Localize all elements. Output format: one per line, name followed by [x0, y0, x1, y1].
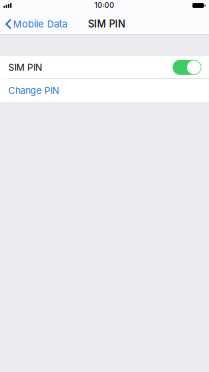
- staticText: 10:00: [94, 1, 114, 10]
- staticText: SIM PIN: [8, 62, 42, 73]
- staticText: SIM PIN: [88, 18, 125, 30]
- button[interactable]: Mobile Data: [0, 14, 67, 34]
- staticText: Mobile Data: [13, 18, 67, 30]
- button[interactable]: SIM PIN: [0, 56, 209, 79]
- button[interactable]: Change PIN: [0, 79, 209, 102]
- staticText: Change PIN: [8, 85, 59, 96]
